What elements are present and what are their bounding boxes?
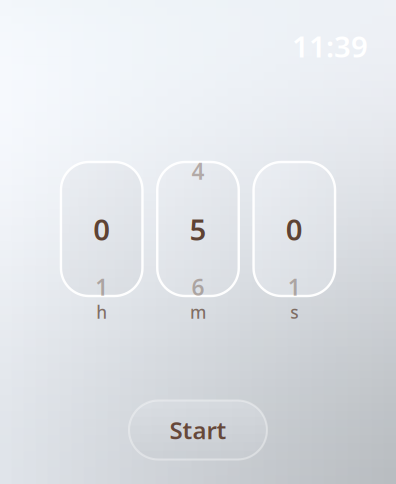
button[interactable]: Start	[129, 400, 267, 459]
staticText: s	[290, 300, 298, 323]
staticText: 1	[288, 272, 301, 302]
staticText: h	[96, 300, 107, 323]
staticText: 6	[191, 272, 204, 302]
staticText: 11:39	[292, 26, 368, 65]
staticText: Start	[169, 414, 226, 446]
button[interactable]: 0	[254, 162, 335, 296]
staticText: 0	[93, 209, 110, 248]
staticText: m	[190, 300, 206, 323]
staticText: 0	[286, 209, 303, 248]
staticText: 1	[95, 272, 108, 302]
staticText: 4	[191, 156, 204, 186]
button[interactable]: 0	[61, 162, 142, 296]
button[interactable]: 5	[157, 162, 239, 296]
staticText: 5	[189, 209, 206, 248]
